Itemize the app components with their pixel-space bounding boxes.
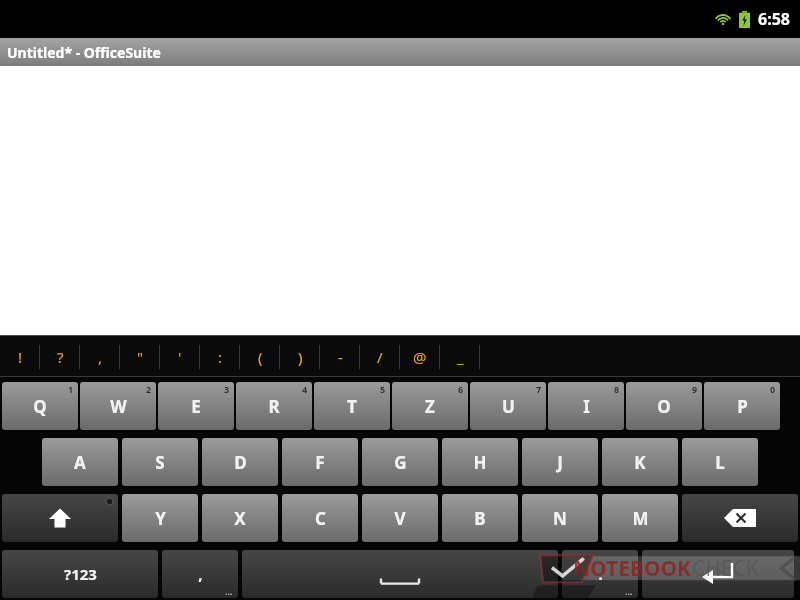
button[interactable]: Enter	[642, 550, 794, 598]
button[interactable]: I	[548, 382, 624, 430]
button[interactable]: @	[400, 337, 440, 377]
staticText: 7	[536, 383, 542, 395]
staticText: )	[298, 347, 303, 367]
button[interactable]: O	[626, 382, 702, 430]
staticText: M	[632, 507, 649, 530]
staticText: 3	[224, 383, 230, 395]
staticText: F	[315, 451, 325, 474]
staticText: Z	[425, 395, 435, 418]
staticText: -	[338, 347, 343, 367]
button[interactable]: S	[122, 438, 198, 486]
button[interactable]: .	[562, 550, 638, 598]
button[interactable]: :	[200, 337, 240, 377]
staticText: 6	[458, 383, 464, 395]
staticText: X	[234, 507, 246, 530]
staticText: NOTEBOOK	[573, 554, 692, 583]
staticText: ?	[57, 347, 64, 367]
staticText: J	[557, 451, 563, 474]
staticText: A	[74, 451, 86, 474]
button[interactable]: ,	[162, 550, 238, 598]
other: Battery charging	[739, 11, 750, 28]
staticText: 5	[380, 383, 386, 395]
staticText: O	[657, 395, 671, 418]
staticText: .	[598, 564, 603, 584]
button[interactable]: C	[282, 494, 358, 542]
staticText: 0	[770, 383, 776, 395]
staticText: N	[553, 507, 567, 530]
button[interactable]: F	[282, 438, 358, 486]
button[interactable]: D	[202, 438, 278, 486]
button[interactable]: B	[442, 494, 518, 542]
staticText: K	[634, 451, 646, 474]
button[interactable]: Untitled* - OfficeSuite	[0, 38, 800, 66]
other: Wi-Fi	[714, 10, 732, 28]
button[interactable]: ?	[40, 337, 80, 377]
button[interactable]: K	[602, 438, 678, 486]
staticText: 9	[692, 383, 698, 395]
button[interactable]: ,	[80, 337, 120, 377]
staticText: CHECK	[692, 554, 759, 583]
staticText: D	[234, 451, 247, 474]
button[interactable]: H	[442, 438, 518, 486]
staticText: R	[268, 395, 280, 418]
staticText: V	[394, 507, 406, 530]
button[interactable]: R	[236, 382, 312, 430]
button[interactable]: '	[160, 337, 200, 377]
button[interactable]: A	[42, 438, 118, 486]
button[interactable]: T	[314, 382, 390, 430]
staticText: :	[218, 347, 223, 367]
staticText: Untitled* - OfficeSuite	[7, 43, 161, 62]
staticText: Q	[33, 395, 47, 418]
staticText: I	[583, 395, 590, 418]
button[interactable]: Q	[2, 382, 78, 430]
button[interactable]: E	[158, 382, 234, 430]
button[interactable]: Backspace	[682, 494, 798, 542]
button[interactable]: ?123	[2, 550, 158, 598]
button[interactable]: -	[320, 337, 360, 377]
button[interactable]: Z	[392, 382, 468, 430]
button[interactable]: Y	[122, 494, 198, 542]
button[interactable]: )	[280, 337, 320, 377]
button[interactable]: _	[440, 337, 480, 377]
button[interactable]: X	[202, 494, 278, 542]
staticText: !	[18, 347, 23, 367]
button[interactable]: Space	[242, 550, 558, 598]
staticText: C	[315, 507, 326, 530]
staticText: '	[178, 347, 182, 367]
button[interactable]: Shift	[2, 494, 118, 542]
staticText: _	[457, 347, 464, 367]
button[interactable]: (	[240, 337, 280, 377]
button[interactable]: J	[522, 438, 598, 486]
staticText: P	[737, 395, 748, 418]
staticText: ?123	[64, 564, 97, 584]
button[interactable]: N	[522, 494, 598, 542]
staticText: ...	[225, 585, 233, 597]
button[interactable]: V	[362, 494, 438, 542]
button[interactable]: L	[682, 438, 758, 486]
staticText: @	[413, 347, 427, 367]
staticText: U	[502, 395, 515, 418]
staticText: Y	[155, 507, 166, 530]
staticText: 2	[146, 383, 152, 395]
button[interactable]: "	[120, 337, 160, 377]
staticText: "	[137, 347, 144, 367]
staticText: 1	[68, 383, 74, 395]
staticText: T	[347, 395, 357, 418]
staticText: W	[110, 395, 127, 418]
staticText: L	[715, 451, 725, 474]
button[interactable]: P	[704, 382, 780, 430]
button[interactable]: U	[470, 382, 546, 430]
staticText: /	[377, 347, 383, 367]
button[interactable]: M	[602, 494, 678, 542]
staticText: 8	[614, 383, 620, 395]
button[interactable]: W	[80, 382, 156, 430]
button[interactable]: G	[362, 438, 438, 486]
staticText: (	[258, 347, 263, 367]
button[interactable]: !	[0, 337, 40, 377]
staticText: H	[473, 451, 487, 474]
staticText: 6:58	[758, 8, 790, 30]
staticText: E	[191, 395, 201, 418]
staticText: S	[155, 451, 165, 474]
button[interactable]: /	[360, 337, 400, 377]
